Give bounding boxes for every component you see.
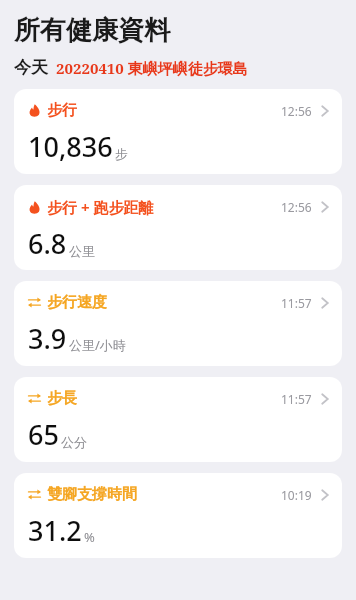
button[interactable]: 步行 + 跑步距離	[14, 185, 342, 270]
staticText: 步行速度	[47, 293, 107, 312]
staticText: 6.8	[28, 225, 67, 262]
staticText: 步長	[47, 389, 77, 408]
staticText: 雙腳支撐時間	[47, 485, 137, 504]
staticText: 公里	[69, 243, 95, 259]
button[interactable]: 雙腳支撐時間	[14, 473, 342, 558]
staticText: 11:57	[281, 295, 312, 311]
button[interactable]: 步行速度	[14, 281, 342, 366]
staticText: 10:19	[281, 487, 312, 503]
staticText: 31.2	[28, 512, 82, 549]
staticText: 公分	[61, 434, 87, 450]
other: Show details	[321, 392, 329, 406]
button[interactable]: 步行	[14, 89, 342, 174]
staticText: 今天	[14, 57, 48, 78]
staticText: 65	[28, 416, 59, 453]
staticText: %	[84, 528, 95, 546]
other: Show details	[321, 488, 329, 502]
staticText: 步行 + 跑步距離	[47, 197, 154, 217]
staticText: 3.9	[28, 320, 67, 357]
other: Show details	[321, 104, 329, 118]
staticText: 10,836	[28, 128, 113, 165]
other: Show details	[321, 296, 329, 310]
other: Show details	[321, 200, 329, 214]
staticText: 公里/小時	[69, 336, 126, 354]
staticText: 步	[115, 146, 128, 162]
staticText: 所有健康資料	[14, 14, 170, 47]
staticText: 11:57	[281, 391, 312, 407]
staticText: 步行	[47, 101, 77, 120]
staticText: 20220410 東嶼坪嶼徒步環島	[56, 58, 248, 78]
button[interactable]: 步長	[14, 377, 342, 462]
staticText: 12:56	[281, 199, 312, 215]
staticText: 12:56	[281, 103, 312, 119]
